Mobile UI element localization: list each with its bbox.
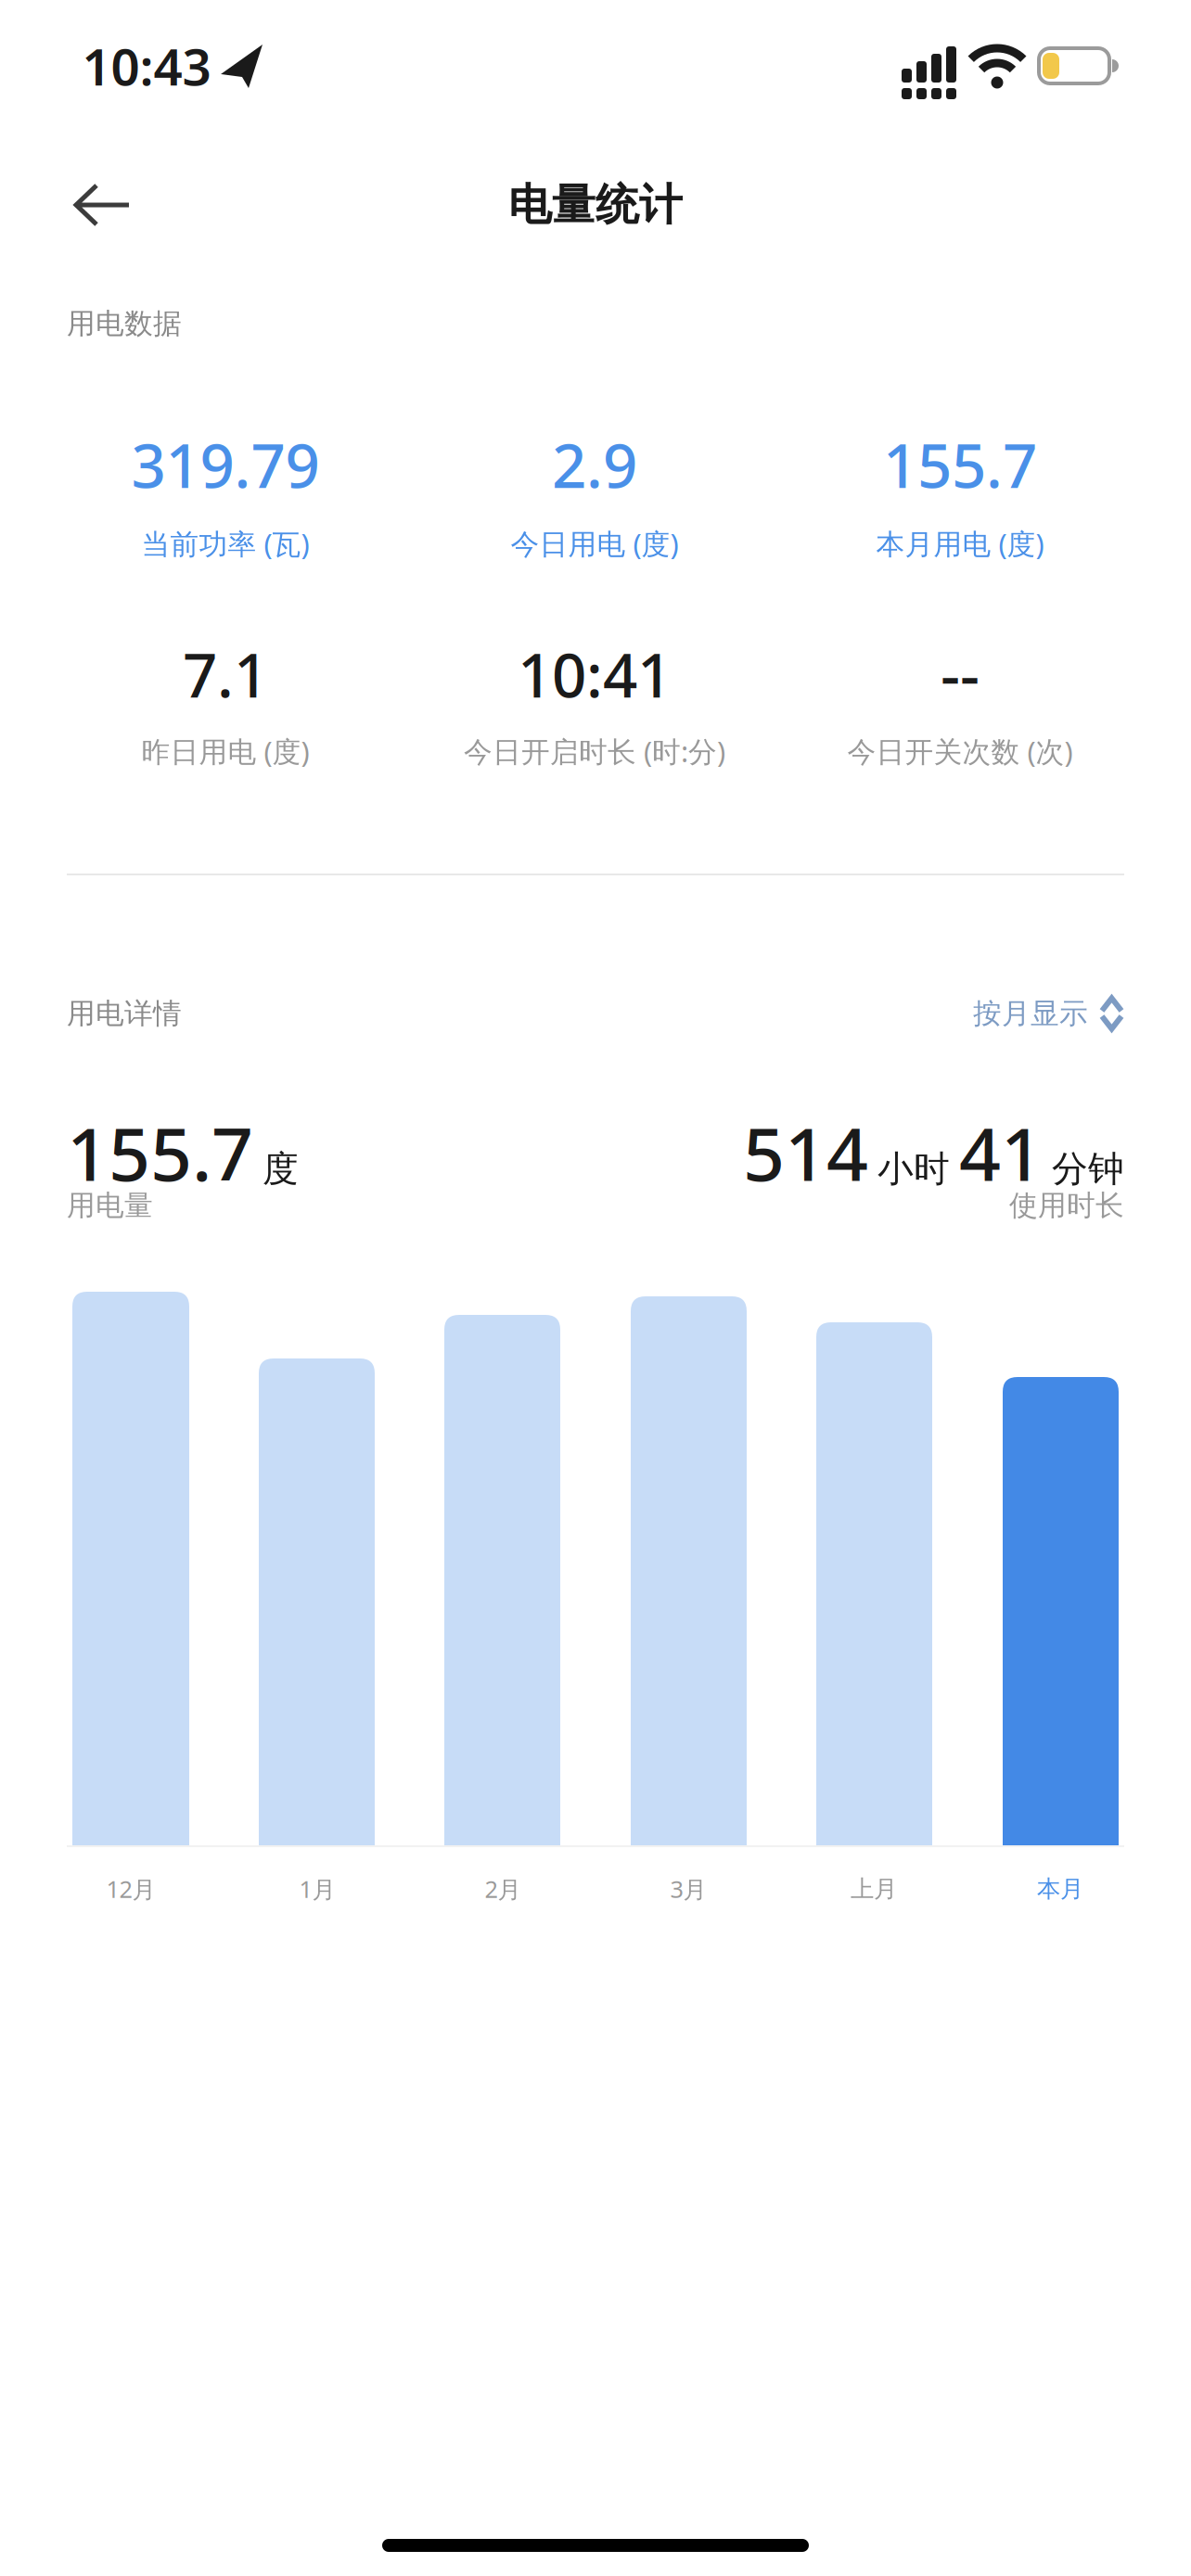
staticText: 10:41 bbox=[518, 634, 672, 714]
button[interactable] bbox=[72, 1292, 189, 1845]
staticText: 度 bbox=[263, 1147, 299, 1191]
staticText: 今日开关次数 (次) bbox=[847, 732, 1073, 770]
staticText: 3月 bbox=[670, 1873, 706, 1904]
staticText: 今日开启时长 (时:分) bbox=[464, 732, 725, 770]
staticText: 41 bbox=[959, 1104, 1043, 1201]
staticText: 上月 bbox=[851, 1874, 897, 1903]
button[interactable] bbox=[259, 1358, 375, 1845]
staticText: 2.9 bbox=[552, 424, 637, 505]
staticText: 昨日用电 (度) bbox=[141, 732, 309, 770]
staticText: 155.7 bbox=[883, 424, 1037, 505]
staticText: -- bbox=[941, 634, 980, 714]
button[interactable] bbox=[816, 1322, 932, 1845]
staticText: 1月 bbox=[299, 1873, 335, 1904]
staticText: 本月用电 (度) bbox=[876, 524, 1044, 562]
staticText: 使用时长 bbox=[1009, 1188, 1124, 1223]
staticText: 514 bbox=[743, 1104, 868, 1201]
staticText: 电量统计 bbox=[508, 178, 683, 231]
button[interactable] bbox=[444, 1315, 560, 1845]
staticText: 319.79 bbox=[131, 424, 320, 505]
staticText: 按月显示 bbox=[973, 996, 1088, 1031]
button[interactable]: 按月显示 bbox=[846, 995, 1124, 1032]
staticText: 10:43 bbox=[82, 32, 211, 99]
staticText: 用电数据 bbox=[67, 306, 182, 341]
staticText: 小时 bbox=[877, 1147, 950, 1191]
staticText: 本月 bbox=[1037, 1874, 1083, 1903]
staticText: 分钟 bbox=[1052, 1147, 1124, 1191]
staticText: 155.7 bbox=[67, 1104, 253, 1201]
staticText: 今日用电 (度) bbox=[511, 524, 679, 562]
button[interactable] bbox=[46, 163, 158, 247]
staticText: 用电详情 bbox=[67, 996, 182, 1031]
staticText: 当前功率 (瓦) bbox=[141, 524, 309, 562]
staticText: 用电量 bbox=[67, 1188, 153, 1223]
staticText: 12月 bbox=[106, 1873, 155, 1904]
staticText: 7.1 bbox=[183, 634, 268, 714]
staticText: 2月 bbox=[485, 1873, 521, 1904]
button[interactable] bbox=[1003, 1377, 1119, 1845]
